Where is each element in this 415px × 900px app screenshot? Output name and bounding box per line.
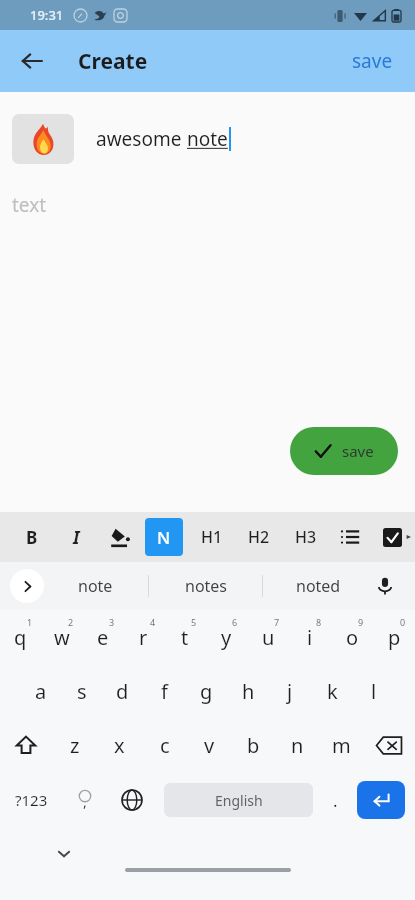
button[interactable]: l (353, 664, 395, 718)
button[interactable]: o (331, 610, 373, 664)
staticText: awesome (96, 126, 187, 152)
staticText: w (54, 624, 70, 651)
button[interactable]: k (311, 664, 353, 718)
staticText: save (352, 48, 393, 74)
button[interactable]: v (187, 719, 231, 771)
staticText: l (371, 678, 377, 705)
staticText: , (83, 792, 87, 811)
staticText: e (97, 624, 109, 651)
button[interactable]: ?123 (0, 774, 62, 826)
staticText: 1 (27, 616, 33, 628)
button[interactable]: Voice input (367, 568, 403, 604)
button[interactable]: Shift (0, 719, 52, 771)
button[interactable]: save (344, 42, 401, 80)
staticText: g (200, 678, 213, 705)
button[interactable]: u (247, 610, 289, 664)
button[interactable]: save (290, 427, 398, 475)
staticText: h (242, 678, 255, 705)
staticText: m (332, 732, 351, 759)
button[interactable]: r (123, 610, 164, 664)
staticText: j (287, 678, 293, 705)
button[interactable]: More suggestions (10, 569, 44, 603)
staticText: 9 (358, 616, 364, 628)
button[interactable]: t (164, 610, 205, 664)
staticText: Create (78, 47, 148, 76)
staticText: r (139, 624, 148, 651)
staticText: ?123 (15, 790, 48, 810)
staticText: note (78, 575, 113, 597)
button[interactable]: q (0, 610, 41, 664)
staticText: 6 (232, 616, 238, 628)
button[interactable]: z (52, 719, 97, 771)
button[interactable]: I (60, 516, 92, 558)
staticText: . (333, 789, 338, 812)
button[interactable]: H3 (288, 516, 324, 558)
button[interactable]: w (41, 610, 82, 664)
button[interactable]: H2 (241, 516, 277, 558)
button[interactable]: f (143, 664, 185, 718)
button[interactable]: H1 (194, 516, 230, 558)
staticText: 4 (150, 616, 156, 628)
staticText: z (70, 732, 80, 759)
button[interactable]: Highlight colour (103, 516, 137, 558)
button[interactable]: Bullet list (334, 516, 366, 558)
button[interactable]: d (102, 664, 143, 718)
button[interactable]: Enter (357, 781, 405, 819)
staticText: t (181, 624, 189, 651)
button[interactable]: N (145, 518, 183, 556)
staticText: x (114, 732, 125, 759)
staticText: u (262, 624, 275, 651)
staticText: 7 (274, 616, 280, 628)
staticText: English (215, 791, 263, 810)
button[interactable]: j (269, 664, 311, 718)
button[interactable]: c (142, 719, 187, 771)
button[interactable]: y (205, 610, 247, 664)
button[interactable]: . (313, 774, 357, 826)
button[interactable]: noted (272, 562, 364, 610)
button[interactable]: note (49, 562, 141, 610)
button[interactable]: x (97, 719, 142, 771)
staticText: 2 (68, 616, 74, 628)
button[interactable]: e (82, 610, 123, 664)
staticText: 3 (109, 616, 115, 628)
button[interactable]: m (319, 719, 363, 771)
button[interactable]: Backspace (363, 719, 415, 771)
button[interactable]: a (20, 664, 61, 718)
staticText: 5 (191, 616, 197, 628)
staticText: H2 (248, 526, 270, 548)
staticText: s (77, 678, 87, 705)
staticText: save (342, 441, 374, 461)
staticText: B (26, 526, 38, 549)
button[interactable]: s (61, 664, 102, 718)
button[interactable]: Back (10, 39, 54, 83)
button[interactable]: Checklist (377, 516, 407, 558)
button[interactable]: p (373, 610, 415, 664)
staticText: y (221, 624, 232, 651)
button[interactable]: g (185, 664, 227, 718)
button[interactable]: i (289, 610, 331, 664)
staticText: 8 (316, 616, 322, 628)
button[interactable]: n (275, 719, 319, 771)
button[interactable]: b (231, 719, 275, 771)
staticText: d (116, 678, 129, 705)
button[interactable]: Emoji (62, 774, 108, 826)
staticText: p (388, 624, 401, 651)
staticText: f (161, 678, 168, 705)
button[interactable]: Change language (108, 774, 156, 826)
staticText: o (346, 624, 359, 651)
button[interactable]: Hide keyboard (44, 834, 84, 874)
staticText: c (160, 732, 170, 759)
button[interactable]: B (16, 516, 48, 558)
staticText: notes (185, 575, 228, 597)
staticText: q (14, 624, 27, 651)
button[interactable]: English (164, 783, 313, 817)
staticText: H1 (201, 526, 223, 548)
button[interactable]: Choose icon (12, 114, 74, 164)
staticText: I (73, 526, 80, 549)
button[interactable]: notes (160, 562, 252, 610)
staticText: N (157, 526, 171, 549)
staticText: a (35, 678, 47, 705)
staticText: b (247, 732, 260, 759)
staticText: text (12, 192, 47, 218)
button[interactable]: h (227, 664, 269, 718)
